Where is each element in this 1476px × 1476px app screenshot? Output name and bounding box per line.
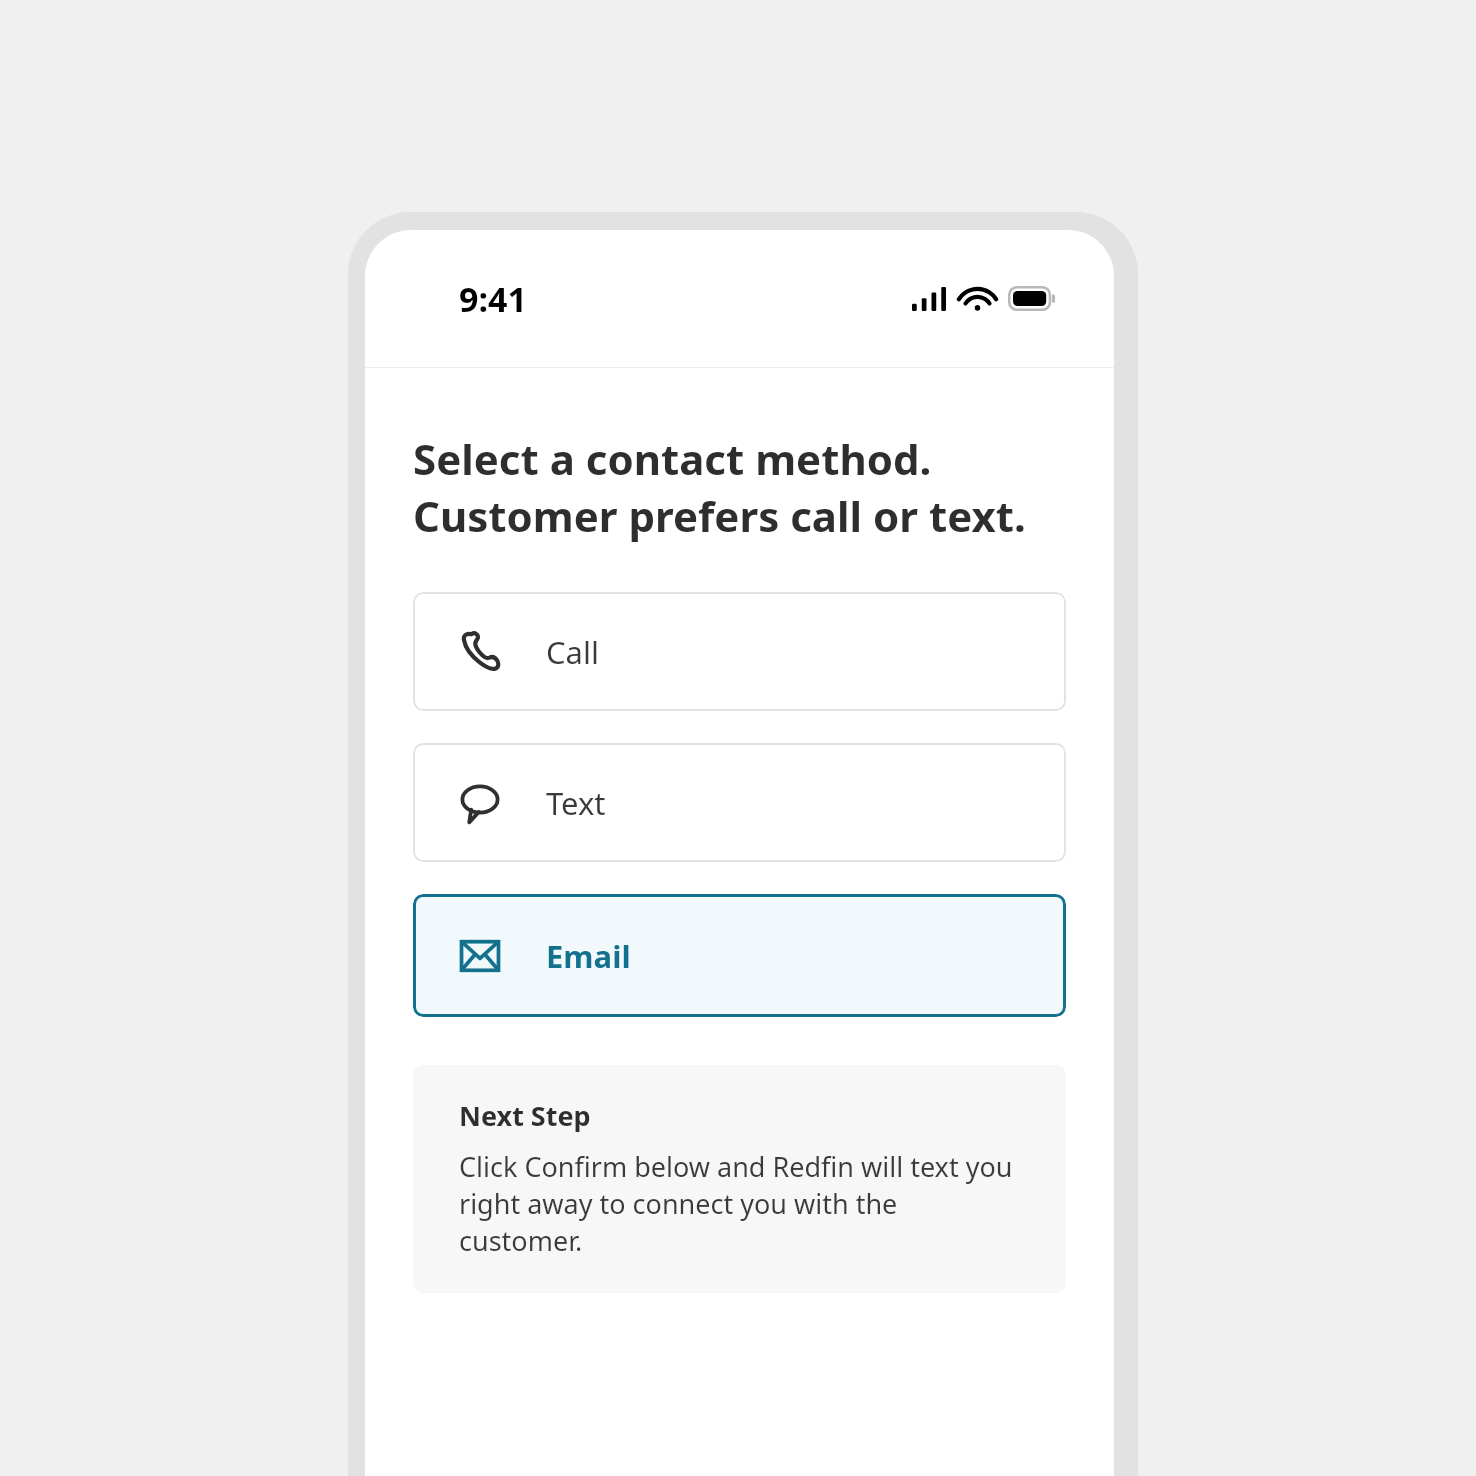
staticText: Next Step (459, 1097, 591, 1134)
staticText: 9:41 (459, 276, 527, 322)
staticText: Call (546, 631, 599, 673)
staticText: Select a contact method. (413, 430, 932, 487)
button[interactable]: Call (413, 592, 1066, 711)
staticText: Click Confirm below and Redfin will text… (459, 1148, 1026, 1259)
staticText: Customer prefers call or text. (413, 487, 1026, 544)
button[interactable]: Text (413, 743, 1066, 862)
staticText: Text (546, 782, 606, 824)
button[interactable]: Email (413, 894, 1066, 1017)
staticText: Email (546, 935, 631, 977)
